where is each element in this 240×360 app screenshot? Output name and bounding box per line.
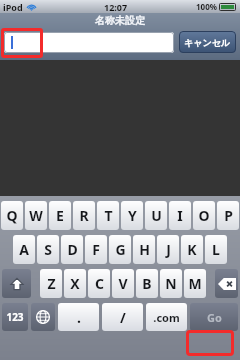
- staticText: B: [142, 274, 152, 293]
- staticText: 123: [6, 310, 24, 324]
- button[interactable]: S: [37, 235, 59, 264]
- button[interactable]: U: [145, 201, 167, 230]
- staticText: Go: [207, 310, 222, 325]
- staticText: H: [139, 240, 150, 259]
- button[interactable]: Q: [1, 201, 23, 230]
- button[interactable]: X: [64, 269, 86, 298]
- staticText: キャンセル: [184, 37, 231, 48]
- button[interactable]: V: [112, 269, 134, 298]
- button[interactable]: [4, 32, 174, 53]
- button[interactable]: M: [184, 269, 206, 298]
- staticText: /: [120, 308, 126, 327]
- staticText: E: [56, 206, 64, 225]
- staticText: iPod: [3, 1, 23, 13]
- staticText: T: [104, 206, 113, 225]
- button[interactable]: T: [97, 201, 119, 230]
- staticText: I: [177, 206, 183, 225]
- staticText: .com: [153, 310, 180, 325]
- button[interactable]: A: [13, 235, 35, 264]
- staticText: C: [95, 274, 104, 293]
- staticText: 名称未設定: [95, 14, 145, 27]
- button[interactable]: .com: [146, 303, 187, 331]
- staticText: X: [70, 274, 80, 293]
- staticText: 100%: [196, 1, 217, 12]
- button[interactable]: I: [169, 201, 191, 230]
- staticText: .: [77, 308, 81, 327]
- button[interactable]: G: [109, 235, 131, 264]
- button[interactable]: W: [25, 201, 47, 230]
- button[interactable]: Y: [121, 201, 143, 230]
- staticText: O: [198, 206, 210, 225]
- staticText: J: [166, 240, 171, 259]
- staticText: Y: [128, 206, 137, 225]
- button[interactable]: D: [61, 235, 83, 264]
- button[interactable]: K: [181, 235, 203, 264]
- button[interactable]: 123: [2, 303, 28, 331]
- button[interactable]: P: [217, 201, 239, 230]
- staticText: P: [224, 206, 233, 225]
- staticText: 12:07: [104, 1, 128, 13]
- staticText: Z: [47, 274, 56, 293]
- button[interactable]: C: [88, 269, 110, 298]
- staticText: K: [187, 240, 197, 259]
- button[interactable]: R: [73, 201, 95, 230]
- button[interactable]: Shift: [2, 269, 31, 298]
- button[interactable]: .: [58, 303, 99, 331]
- staticText: R: [79, 206, 89, 225]
- staticText: U: [151, 206, 162, 225]
- staticText: S: [44, 240, 52, 259]
- button[interactable]: Z: [40, 269, 62, 298]
- button[interactable]: キャンセル: [179, 31, 236, 53]
- button[interactable]: H: [133, 235, 155, 264]
- button[interactable]: N: [160, 269, 182, 298]
- button[interactable]: B: [136, 269, 158, 298]
- button[interactable]: F: [85, 235, 107, 264]
- button[interactable]: L: [205, 235, 227, 264]
- staticText: D: [67, 240, 78, 259]
- staticText: F: [92, 240, 100, 259]
- staticText: V: [118, 274, 128, 293]
- button[interactable]: E: [49, 201, 71, 230]
- button[interactable]: Change keyboard: [31, 303, 55, 331]
- staticText: L: [212, 240, 220, 259]
- button[interactable]: O: [193, 201, 215, 230]
- button[interactable]: /: [102, 303, 143, 331]
- staticText: W: [29, 206, 43, 225]
- staticText: G: [115, 240, 126, 259]
- staticText: A: [19, 240, 29, 259]
- button[interactable]: Delete: [215, 269, 238, 298]
- staticText: M: [188, 274, 202, 293]
- button[interactable]: J: [157, 235, 179, 264]
- staticText: N: [165, 274, 177, 293]
- button[interactable]: Go: [190, 303, 238, 331]
- staticText: Q: [6, 206, 18, 225]
